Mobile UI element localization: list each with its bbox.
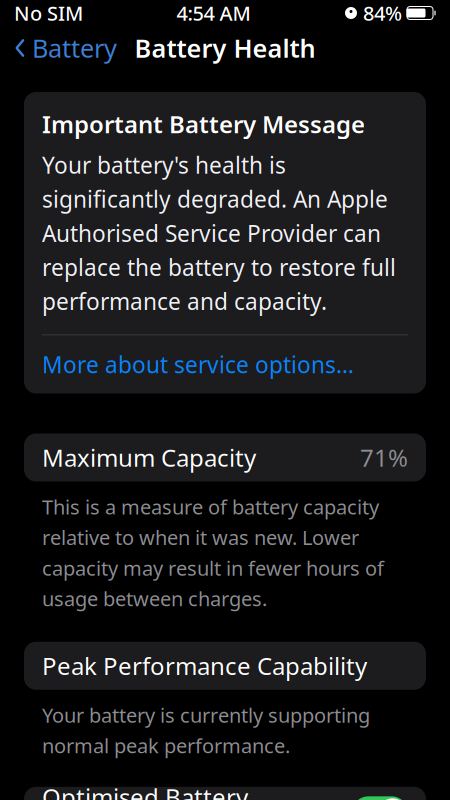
staticText: This is a measure of battery capacity re… <box>42 493 384 612</box>
button[interactable]: Peak Performance Capability <box>24 642 426 690</box>
staticText: 84% <box>363 0 402 26</box>
staticText: Your battery is currently supporting nor… <box>42 702 370 759</box>
staticText: 71% <box>360 441 408 473</box>
staticText: 4:54 AM <box>176 0 250 26</box>
staticText: More about service options… <box>42 349 354 379</box>
button[interactable]: Maximum Capacity <box>24 433 426 481</box>
staticText: Optimised Battery Charging <box>42 781 248 800</box>
button[interactable]: Optimised Battery Charging <box>24 787 426 800</box>
staticText: Battery <box>32 31 117 65</box>
staticText: Battery Health <box>134 31 315 65</box>
button[interactable]: Battery <box>0 23 131 73</box>
staticText: Your battery's health is significantly d… <box>42 150 396 316</box>
staticText: Important Battery Message <box>42 108 365 140</box>
staticText: Maximum Capacity <box>42 441 256 473</box>
button[interactable]: More about service options… <box>42 335 408 393</box>
staticText: Peak Performance Capability <box>42 650 367 682</box>
staticText: No SIM <box>14 0 83 26</box>
